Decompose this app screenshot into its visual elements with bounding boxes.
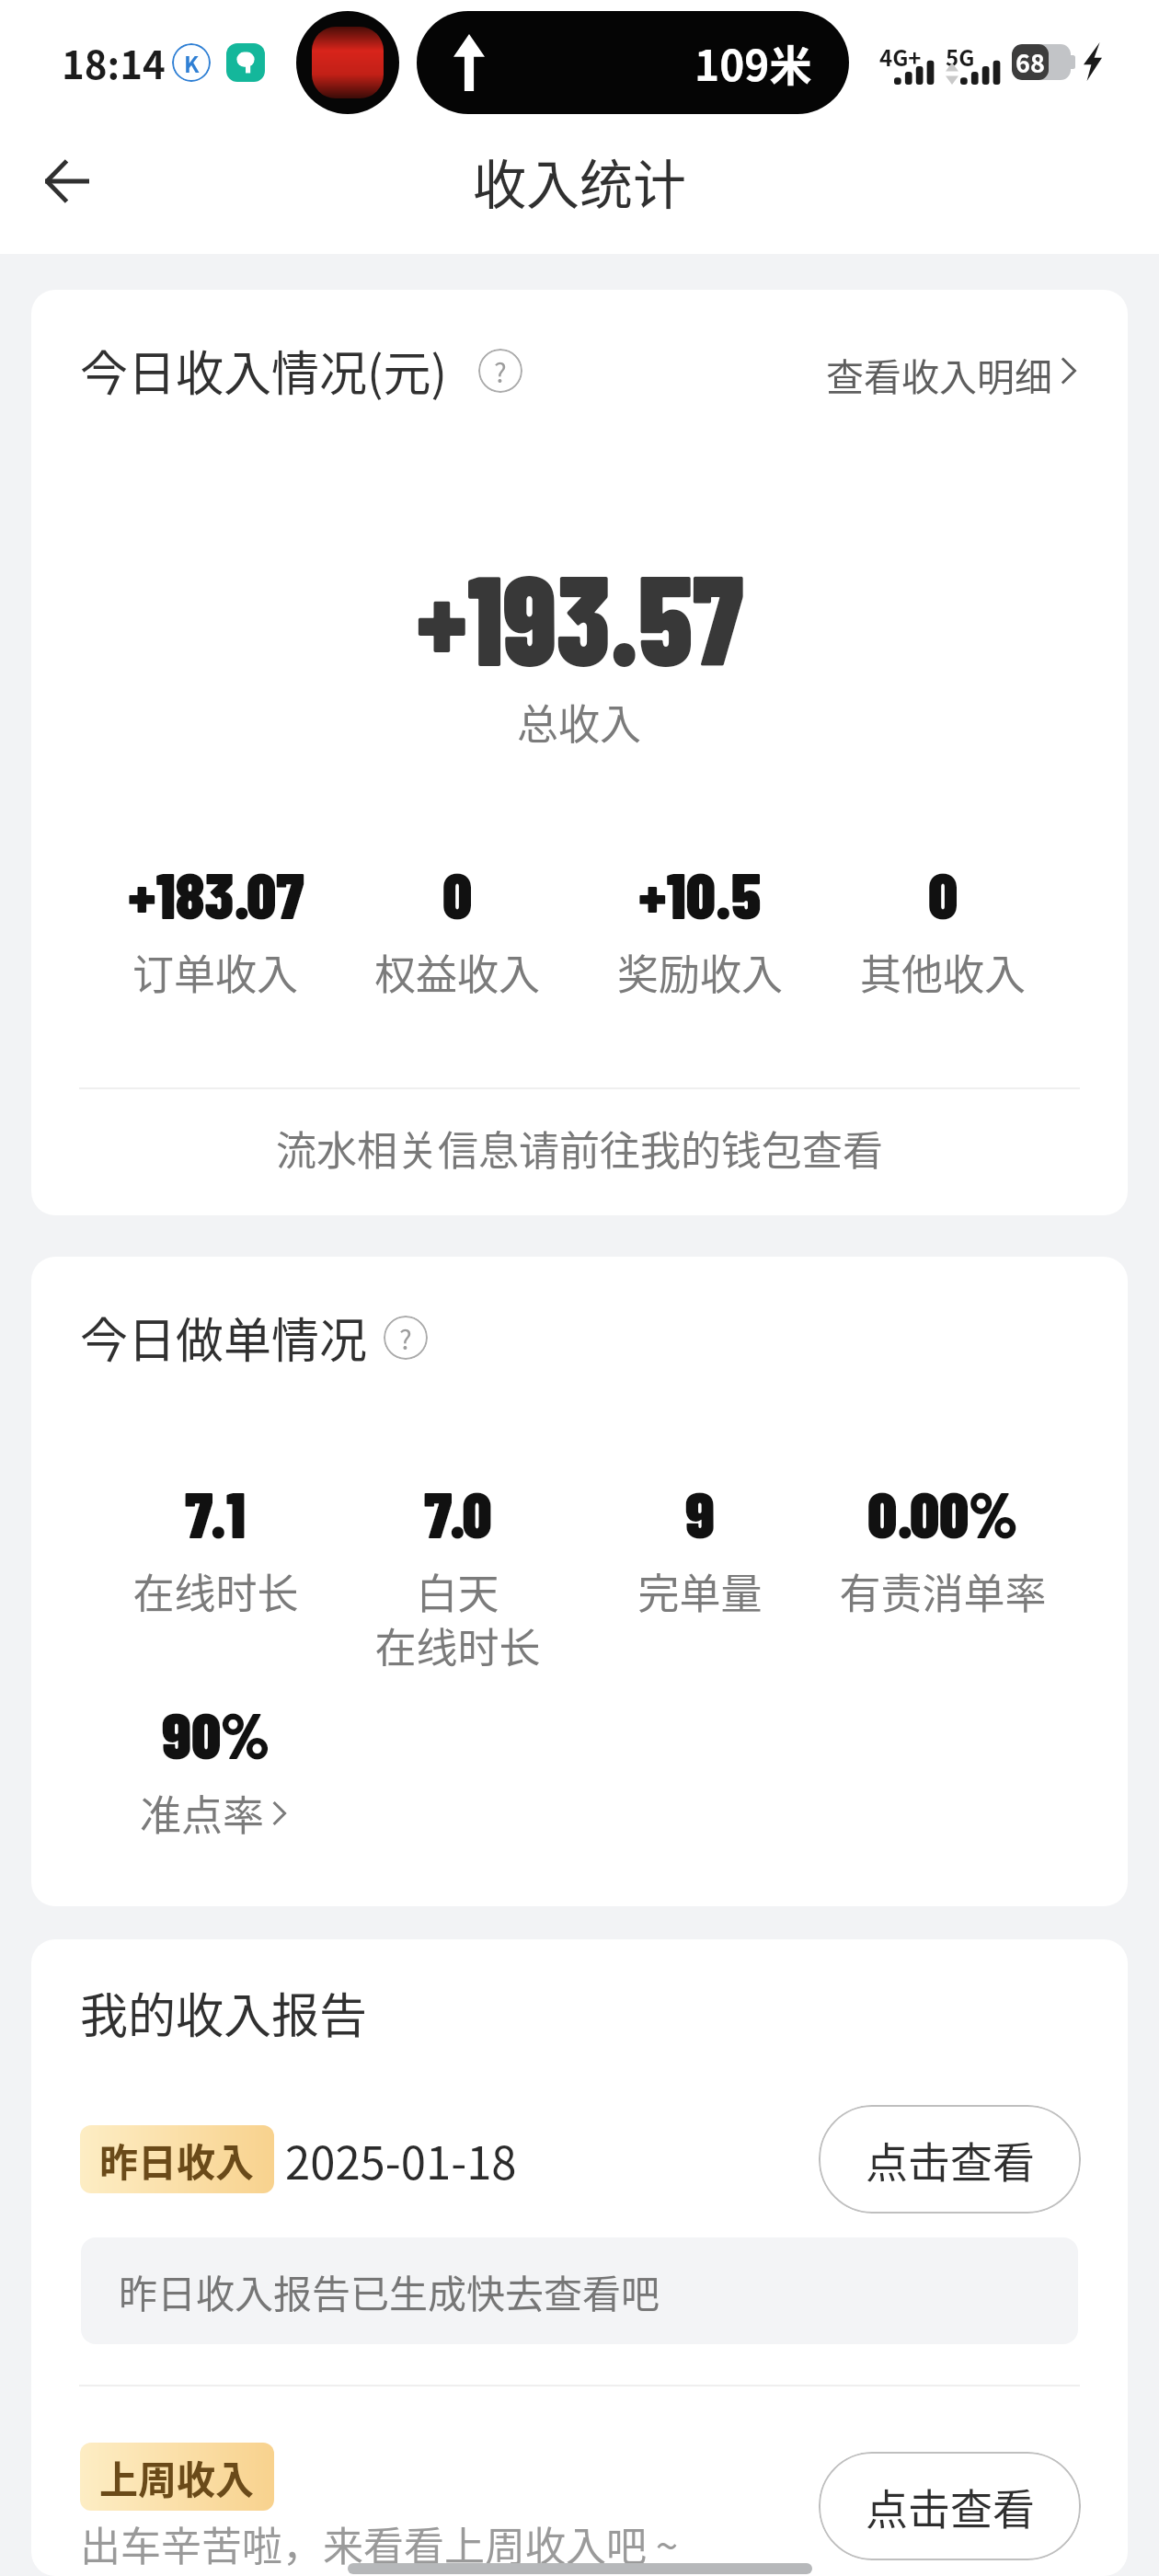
button[interactable]: 90% (95, 1713, 337, 1843)
staticText: 今日收入情况(元) (80, 336, 448, 405)
button[interactable]: Help (384, 1316, 428, 1360)
staticText: 4G+ (879, 40, 922, 73)
staticText: 点击查看 (866, 2476, 1035, 2537)
staticText: +10.5 (638, 855, 762, 932)
staticText: 68 (1016, 44, 1045, 80)
staticText: 奖励收入 (617, 942, 784, 1002)
staticText: 订单收入 (132, 942, 299, 1002)
staticText: 90% (162, 1695, 270, 1772)
staticText: +183.07 (128, 855, 304, 932)
staticText: 总收入 (517, 692, 642, 752)
staticText: ? (494, 351, 507, 390)
staticText: 白天 在线时长 (374, 1561, 541, 1675)
staticText: 9 (685, 1474, 715, 1551)
staticText: 109米 (694, 32, 812, 94)
button[interactable]: 点击查看 (819, 2105, 1081, 2214)
staticText: 出车辛苦啦，来看看上周收入吧 ~ (80, 2514, 679, 2573)
staticText: 0 (928, 855, 958, 932)
staticText: 0 (442, 855, 473, 932)
staticText: K (184, 47, 200, 79)
staticText: ? (399, 1318, 412, 1357)
button[interactable]: Help (478, 349, 522, 393)
staticText: 查看收入明细 (826, 347, 1052, 401)
staticText: 5G (946, 40, 975, 73)
staticText: 完单量 (637, 1561, 763, 1621)
button[interactable]: 查看收入明细 (826, 343, 1084, 397)
staticText: 流水相关信息请前往我的钱包查看 (31, 1119, 1128, 1178)
staticText: 今日做单情况 (80, 1303, 368, 1372)
staticText: +193.57 (416, 539, 744, 692)
staticText: 在线时长 (132, 1561, 299, 1621)
button[interactable]: Back (25, 139, 109, 224)
staticText: 收入统计 (473, 143, 687, 220)
staticText: 7.0 (424, 1474, 492, 1551)
staticText: 其他收入 (860, 942, 1027, 1002)
staticText: 0.00% (867, 1474, 1018, 1551)
staticText: 点击查看 (866, 2129, 1035, 2191)
staticText: 准点率 (140, 1783, 265, 1843)
staticText: 7.1 (185, 1474, 247, 1551)
staticText: 昨日收入报告已生成快去查看吧 (119, 2263, 660, 2319)
staticText: 2025-01-18 (285, 2127, 517, 2192)
staticText: 上周收入 (99, 2449, 255, 2505)
staticText: 昨日收入 (99, 2132, 255, 2188)
staticText: 权益收入 (374, 942, 541, 1002)
staticText: 有责消单率 (839, 1561, 1047, 1621)
button[interactable]: 点击查看 (819, 2452, 1081, 2560)
staticText: 18:14 (62, 34, 166, 90)
staticText: 我的收入报告 (80, 1978, 368, 2047)
